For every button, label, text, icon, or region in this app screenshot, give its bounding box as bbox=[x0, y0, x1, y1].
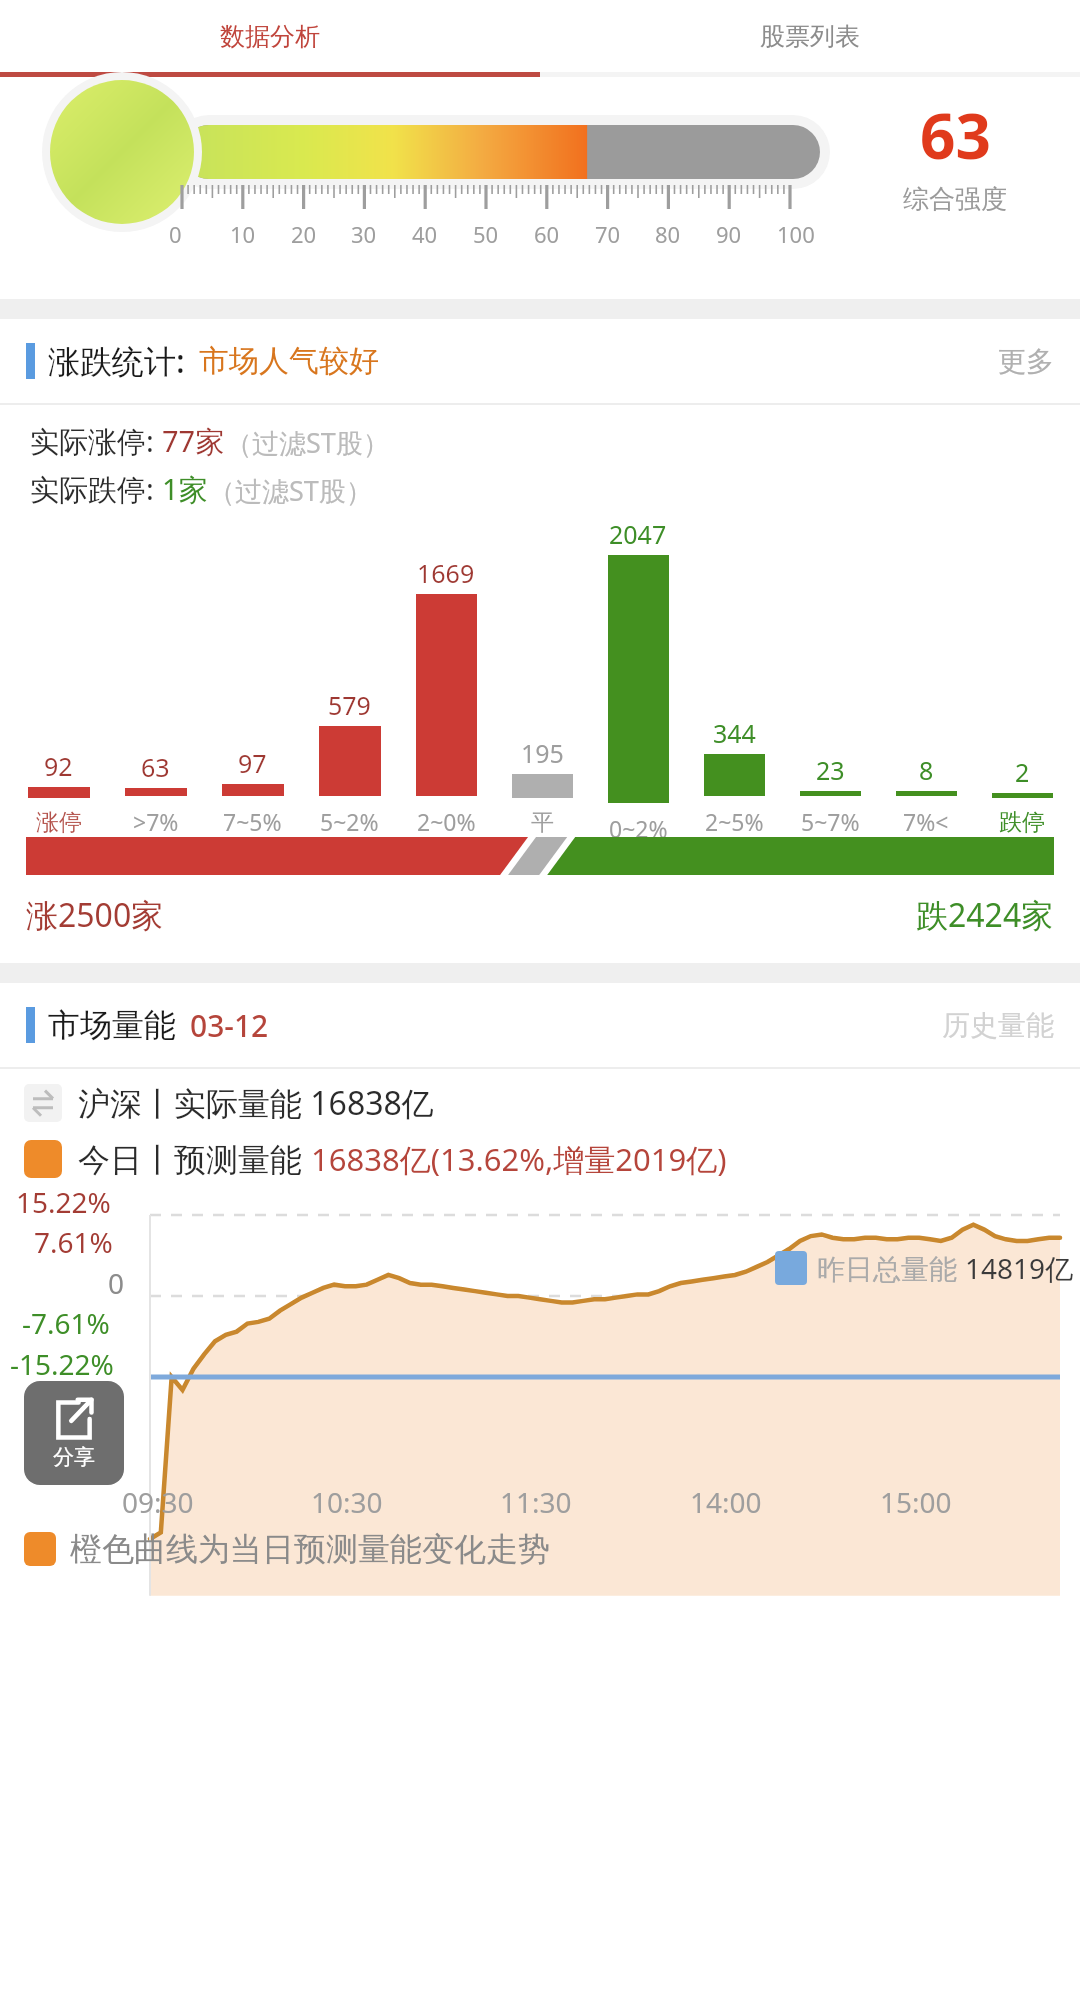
staticText: 7.61% bbox=[34, 1223, 113, 1261]
staticText: 实际涨停: bbox=[30, 421, 162, 461]
staticText: 昨日总量能 bbox=[817, 1249, 965, 1287]
button[interactable]: 1669 bbox=[398, 556, 494, 837]
staticText: 5~2% bbox=[320, 806, 379, 837]
staticText: 市场人气较好 bbox=[199, 342, 379, 380]
staticText: 8 bbox=[919, 753, 934, 787]
staticText: 0~2% bbox=[609, 813, 668, 837]
staticText: 2~5% bbox=[705, 806, 764, 837]
staticText: 数据分析 bbox=[220, 21, 320, 52]
staticText: 100 bbox=[777, 219, 815, 249]
staticText: 23 bbox=[816, 753, 845, 787]
button[interactable]: 23 bbox=[782, 753, 878, 837]
staticText: 1669 bbox=[417, 556, 475, 590]
staticText: 跌2424家 bbox=[916, 893, 1054, 937]
staticText: 40 bbox=[412, 219, 438, 249]
button[interactable]: 92 bbox=[10, 749, 107, 837]
staticText: 90 bbox=[716, 219, 742, 249]
button[interactable]: 63 bbox=[107, 750, 204, 837]
staticText: 579 bbox=[328, 688, 371, 722]
staticText: 市场量能 bbox=[48, 1005, 176, 1045]
staticText: 11:30 bbox=[500, 1483, 572, 1521]
button[interactable]: 分享 bbox=[24, 1381, 124, 1485]
staticText: >7% bbox=[133, 806, 179, 837]
staticText: 97 bbox=[238, 746, 267, 780]
staticText: 分享 bbox=[53, 1444, 95, 1470]
button[interactable]: 市场量能 bbox=[0, 983, 1080, 1067]
staticText: 20 bbox=[291, 219, 317, 249]
staticText: 橙色曲线为当日预测量能变化走势 bbox=[70, 1529, 550, 1569]
staticText: 63 bbox=[141, 750, 170, 784]
staticText: 344 bbox=[713, 716, 756, 750]
staticText: 2047 bbox=[609, 517, 667, 551]
button[interactable]: 股票列表 bbox=[540, 0, 1080, 72]
staticText: 股票列表 bbox=[760, 21, 860, 52]
staticText: -15.22% bbox=[10, 1345, 114, 1383]
button[interactable]: 344 bbox=[686, 716, 782, 837]
staticText: -7.61% bbox=[22, 1304, 110, 1342]
staticText: （过滤ST股） bbox=[225, 424, 390, 461]
staticText: 1家 bbox=[162, 469, 208, 509]
staticText: 0 bbox=[108, 1264, 125, 1302]
staticText: 15.22% bbox=[16, 1183, 111, 1221]
staticText: 60 bbox=[534, 219, 560, 249]
staticText: 92 bbox=[44, 749, 73, 783]
staticText: 50 bbox=[473, 219, 499, 249]
staticText: 7~5% bbox=[223, 806, 282, 837]
button[interactable]: 579 bbox=[301, 688, 398, 837]
staticText: 14819亿 bbox=[965, 1249, 1074, 1287]
staticText: 03-12 bbox=[190, 1005, 269, 1046]
staticText: 0 bbox=[169, 219, 182, 249]
staticText: 63 bbox=[920, 93, 991, 177]
button[interactable]: 2 bbox=[974, 755, 1070, 837]
button[interactable]: 2047 bbox=[590, 517, 686, 837]
button[interactable]: 8 bbox=[878, 753, 974, 837]
staticText: 涨停 bbox=[36, 808, 82, 837]
staticText: 16838亿(13.62%,增量2019亿) bbox=[311, 1138, 727, 1180]
staticText: 涨2500家 bbox=[26, 893, 164, 937]
staticText: 跌停 bbox=[999, 808, 1045, 837]
staticText: 77家 bbox=[162, 421, 225, 461]
button[interactable]: 195 bbox=[494, 736, 590, 837]
staticText: 14:00 bbox=[690, 1483, 762, 1521]
button[interactable]: 涨跌统计: bbox=[0, 319, 1080, 403]
staticText: 09:30 bbox=[122, 1483, 194, 1521]
staticText: 实际跌停: bbox=[30, 469, 162, 509]
staticText: 综合强度 bbox=[903, 183, 1007, 216]
staticText: 70 bbox=[595, 219, 621, 249]
staticText: 30 bbox=[351, 219, 377, 249]
staticText: 10:30 bbox=[311, 1483, 383, 1521]
staticText: 更多 bbox=[998, 344, 1054, 379]
staticText: 10 bbox=[230, 219, 256, 249]
staticText: 今日丨预测量能 bbox=[78, 1137, 311, 1181]
staticText: 沪深丨实际量能 16838亿 bbox=[78, 1081, 434, 1125]
staticText: 2~0% bbox=[417, 806, 476, 837]
staticText: 涨跌统计: bbox=[48, 339, 185, 383]
staticText: 历史量能 bbox=[942, 1008, 1054, 1043]
staticText: 2 bbox=[1015, 755, 1030, 789]
staticText: 5~7% bbox=[801, 806, 860, 837]
button[interactable]: 97 bbox=[204, 746, 301, 837]
staticText: （过滤ST股） bbox=[208, 472, 373, 509]
staticText: 80 bbox=[655, 219, 681, 249]
staticText: 7%< bbox=[903, 806, 949, 837]
staticText: 平 bbox=[531, 808, 554, 837]
staticText: 15:00 bbox=[880, 1483, 952, 1521]
button[interactable]: 数据分析 bbox=[0, 0, 540, 72]
staticText: 195 bbox=[521, 736, 564, 770]
